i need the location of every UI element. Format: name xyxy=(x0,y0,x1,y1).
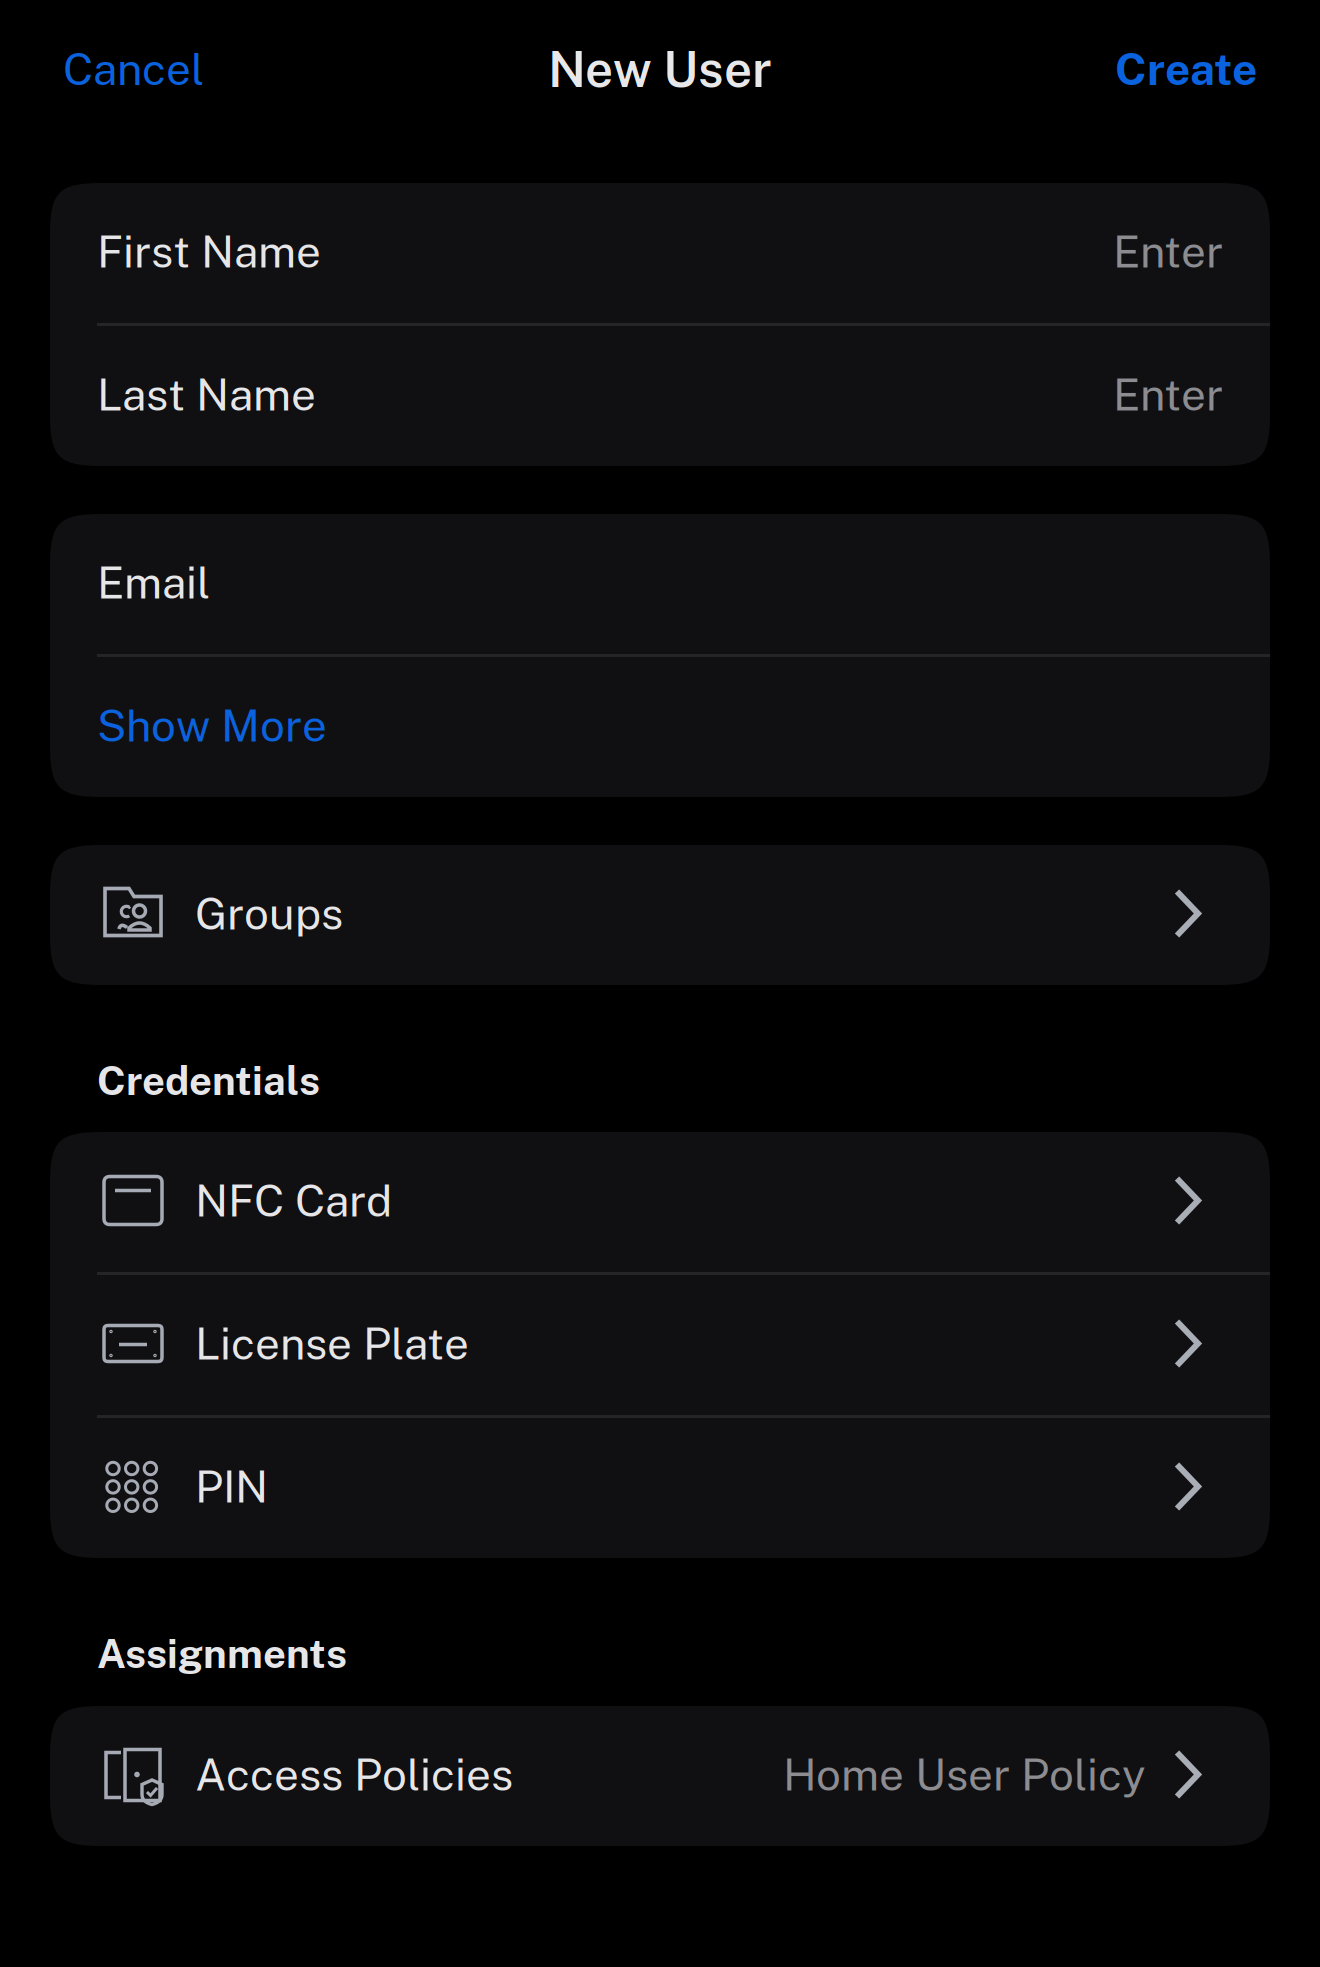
button[interactable]: Last Name xyxy=(50,326,1270,466)
staticText: Cancel xyxy=(63,43,204,95)
staticText: Enter xyxy=(1113,369,1223,420)
button[interactable]: First Name xyxy=(50,183,1270,323)
button[interactable]: Show More xyxy=(50,657,1270,797)
staticText: Last Name xyxy=(97,369,316,420)
staticText: Access Policies xyxy=(195,1749,513,1800)
staticText: Create xyxy=(1115,43,1257,95)
button[interactable]: Cancel xyxy=(63,43,204,95)
button[interactable]: Create xyxy=(1115,43,1257,95)
staticText: Credentials xyxy=(97,1057,320,1104)
button[interactable]: NFC Card xyxy=(50,1132,1270,1272)
staticText: Show More xyxy=(97,700,327,751)
button[interactable]: License Plate xyxy=(50,1275,1270,1415)
button[interactable]: Groups xyxy=(50,845,1270,985)
staticText: New User xyxy=(548,40,772,98)
staticText: Email xyxy=(97,557,210,608)
button[interactable]: Access Policies xyxy=(50,1706,1270,1846)
staticText: License Plate xyxy=(195,1318,469,1369)
staticText: Assignments xyxy=(97,1630,347,1677)
staticText: Enter xyxy=(1113,226,1223,277)
staticText: NFC Card xyxy=(195,1175,392,1226)
staticText: Home User Policy xyxy=(783,1749,1146,1800)
button[interactable]: PIN xyxy=(50,1418,1270,1558)
staticText: First Name xyxy=(97,226,321,277)
staticText: Groups xyxy=(195,888,343,939)
staticText: PIN xyxy=(195,1461,268,1512)
button[interactable]: Email xyxy=(50,514,1270,654)
